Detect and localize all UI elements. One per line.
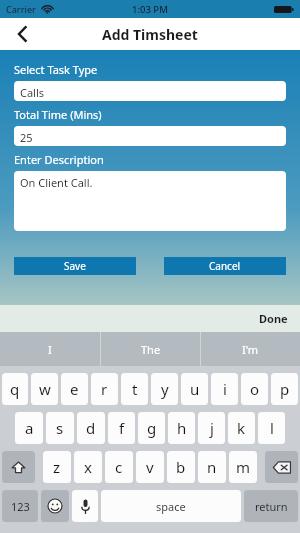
staticText: e: [70, 379, 79, 399]
staticText: m: [236, 457, 251, 477]
staticText: y: [161, 379, 169, 399]
staticText: return: [255, 499, 288, 514]
button[interactable]: h: [168, 412, 195, 444]
button[interactable]: c: [105, 451, 133, 483]
button[interactable]: I'm: [201, 332, 300, 366]
staticText: t: [132, 379, 138, 399]
button[interactable]: The: [101, 332, 200, 366]
button[interactable]: t: [121, 373, 148, 405]
button[interactable]: v: [136, 451, 164, 483]
staticText: I'm: [242, 342, 259, 357]
button[interactable]: d: [77, 412, 105, 444]
button[interactable]: w: [31, 373, 58, 405]
staticText: j: [210, 418, 214, 438]
staticText: a: [25, 418, 34, 438]
button[interactable]: n: [198, 451, 226, 483]
staticText: Total Time (Mins): [14, 107, 102, 122]
button[interactable]: q: [2, 373, 28, 405]
staticText: d: [86, 418, 96, 438]
button[interactable]: a: [15, 412, 43, 444]
staticText: n: [207, 457, 217, 477]
button[interactable]: 25: [14, 126, 286, 146]
staticText: Add Timsheet: [102, 25, 198, 44]
staticText: Carrier: [6, 3, 36, 15]
button[interactable]: On Client Call.: [14, 171, 286, 231]
staticText: o: [250, 379, 260, 399]
button[interactable]: k: [228, 412, 255, 444]
button[interactable]: Emoji: [41, 490, 69, 522]
staticText: v: [146, 457, 154, 477]
staticText: i: [223, 379, 227, 399]
button[interactable]: Backspace: [265, 451, 298, 483]
button[interactable]: Done: [247, 306, 300, 331]
button[interactable]: r: [91, 373, 118, 405]
button[interactable]: space: [101, 490, 241, 522]
button[interactable]: Cancel: [164, 257, 286, 275]
staticText: g: [147, 418, 157, 438]
button[interactable]: z: [43, 451, 71, 483]
button[interactable]: u: [181, 373, 208, 405]
staticText: Calls: [20, 85, 45, 97]
button[interactable]: x: [74, 451, 102, 483]
button[interactable]: e: [61, 373, 88, 405]
staticText: h: [177, 418, 187, 438]
staticText: I: [48, 342, 52, 357]
staticText: p: [280, 379, 290, 399]
button[interactable]: I: [0, 332, 100, 366]
staticText: Save: [64, 259, 86, 273]
staticText: x: [84, 457, 92, 477]
staticText: l: [270, 418, 274, 438]
staticText: w: [39, 379, 51, 399]
button[interactable]: p: [271, 373, 298, 405]
staticText: k: [237, 418, 246, 438]
staticText: b: [176, 457, 186, 477]
button[interactable]: Dictation: [72, 490, 98, 522]
staticText: f: [119, 418, 125, 438]
button[interactable]: Back: [0, 18, 44, 50]
button[interactable]: f: [108, 412, 135, 444]
staticText: Cancel: [209, 259, 241, 273]
staticText: 25: [20, 130, 33, 142]
button[interactable]: m: [229, 451, 257, 483]
staticText: s: [56, 418, 64, 438]
button[interactable]: o: [241, 373, 268, 405]
staticText: 123: [11, 499, 30, 514]
button[interactable]: Calls: [14, 81, 286, 101]
staticText: The: [141, 342, 161, 357]
staticText: On Client Call.: [20, 175, 93, 190]
staticText: c: [115, 457, 123, 477]
staticText: r: [101, 379, 108, 399]
button[interactable]: return: [244, 490, 298, 522]
staticText: space: [156, 499, 186, 514]
button[interactable]: Save: [14, 257, 136, 275]
staticText: Select Task Type: [14, 62, 98, 77]
staticText: q: [10, 379, 20, 399]
button[interactable]: Shift: [2, 451, 35, 483]
button[interactable]: g: [138, 412, 165, 444]
staticText: z: [53, 457, 61, 477]
button[interactable]: 123: [2, 490, 38, 522]
staticText: u: [190, 379, 200, 399]
button[interactable]: i: [211, 373, 238, 405]
button[interactable]: j: [198, 412, 225, 444]
button[interactable]: s: [46, 412, 74, 444]
staticText: Done: [259, 311, 288, 326]
button[interactable]: b: [167, 451, 195, 483]
staticText: 1:03 PM: [132, 3, 168, 16]
staticText: Enter Description: [14, 152, 104, 167]
button[interactable]: y: [151, 373, 178, 405]
button[interactable]: l: [258, 412, 285, 444]
